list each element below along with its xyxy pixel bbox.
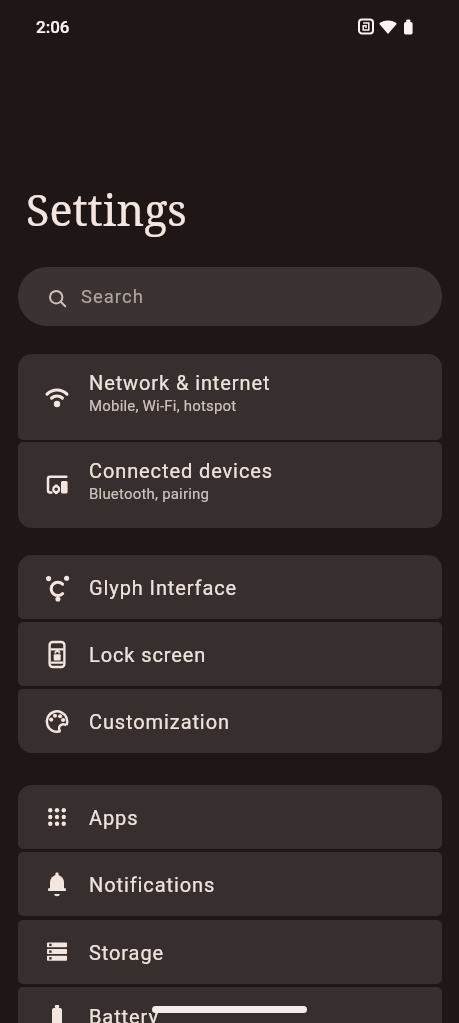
staticText: Lock screen [89, 643, 207, 666]
button[interactable]: Glyph Interface [18, 555, 442, 619]
staticText: Network & internet [89, 371, 271, 394]
staticText: Notifications [89, 873, 216, 896]
staticText: Bluetooth, pairing [89, 485, 210, 503]
staticText: Connected devices [89, 459, 273, 482]
staticText: Glyph Interface [89, 576, 238, 599]
button[interactable]: Notifications [18, 852, 442, 916]
button[interactable]: Apps [18, 785, 442, 849]
button[interactable]: Search [18, 267, 442, 326]
staticText: Apps [89, 806, 139, 829]
button[interactable]: Battery [18, 987, 442, 1023]
button[interactable]: Connected devices [18, 442, 442, 528]
staticText: 2:06 [36, 17, 70, 37]
staticText: Storage [89, 941, 165, 964]
staticText: Mobile, Wi-Fi, hotspot [89, 397, 237, 415]
staticText: Settings [26, 180, 187, 239]
staticText: Customization [89, 710, 230, 733]
button[interactable]: Customization [18, 689, 442, 753]
staticText: Search [81, 286, 144, 308]
button[interactable]: Network & internet [18, 354, 442, 440]
staticText: Battery [89, 1005, 159, 1023]
button[interactable]: Lock screen [18, 622, 442, 686]
button[interactable]: Storage [18, 920, 442, 984]
